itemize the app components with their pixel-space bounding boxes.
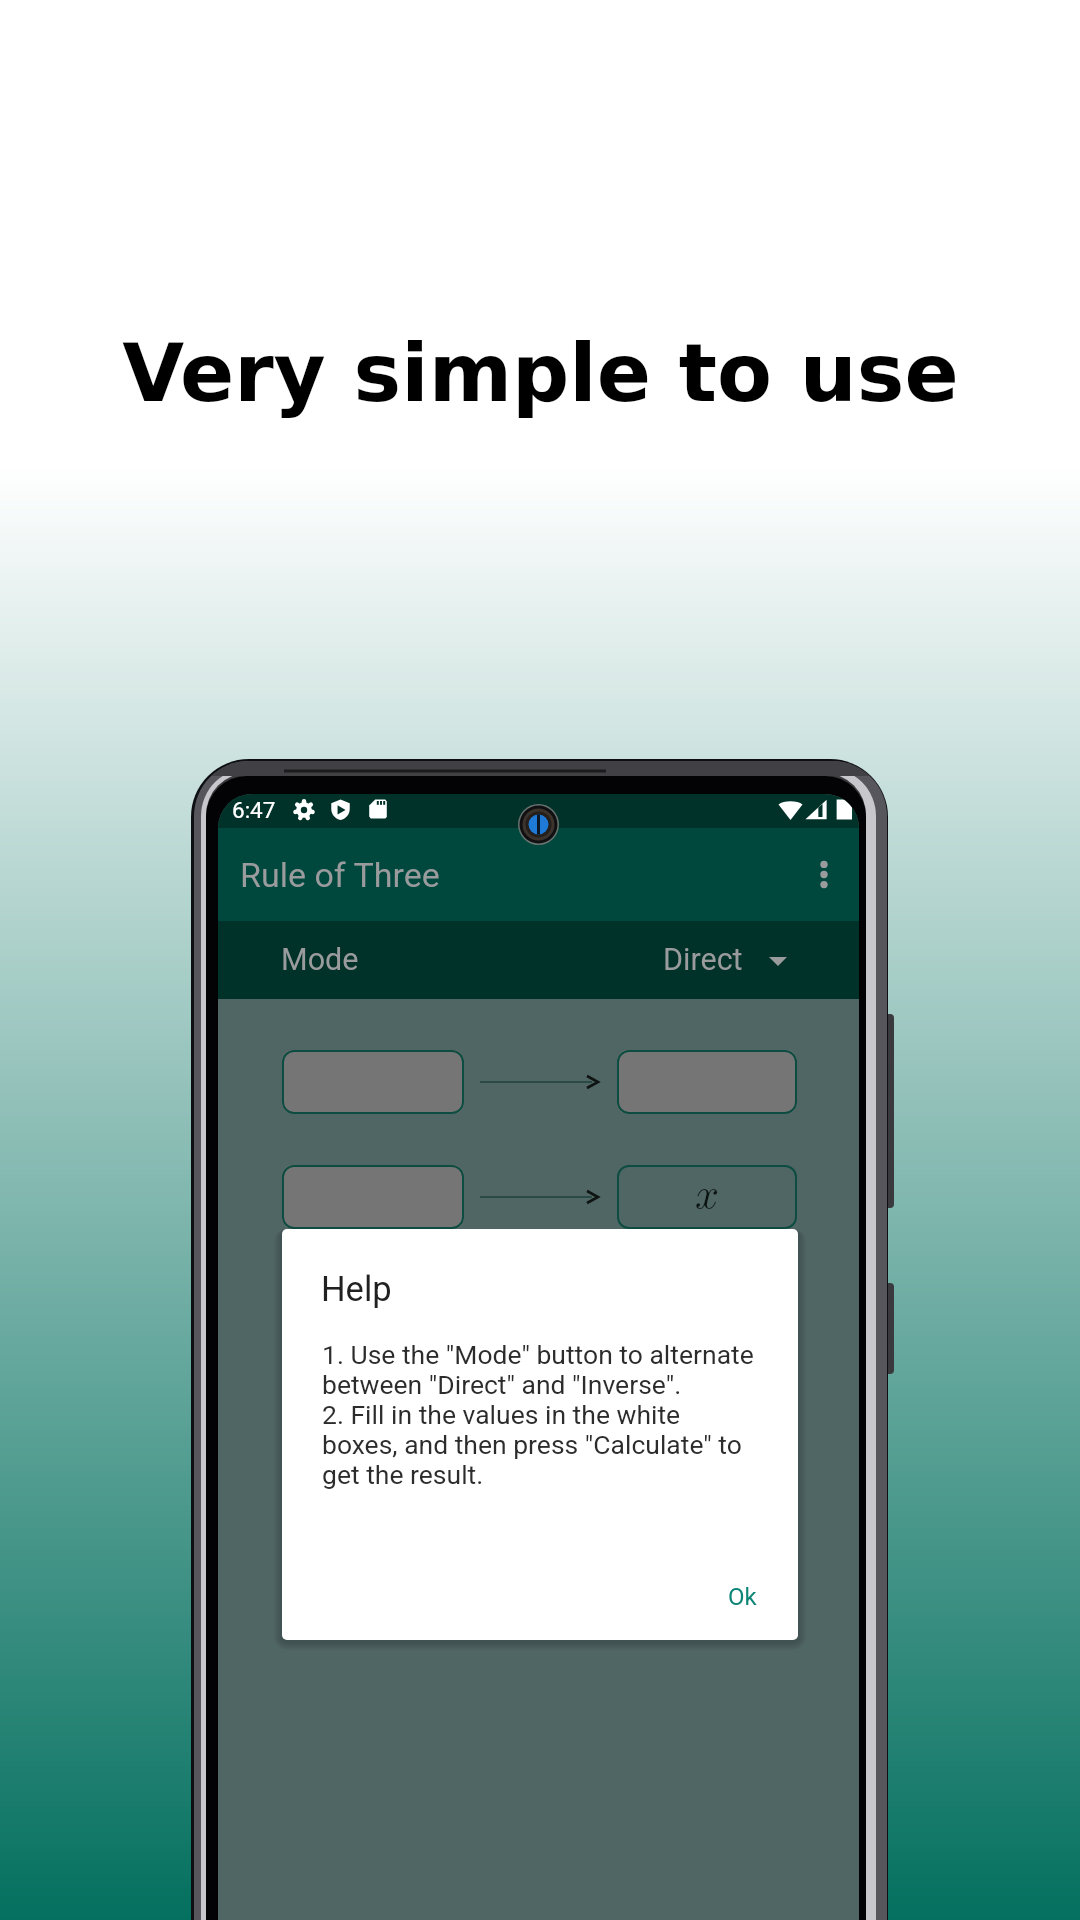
staticText: 6:47 (232, 797, 276, 823)
button[interactable]: 𝑥 (617, 1165, 797, 1229)
button[interactable]: Rule of Three (218, 828, 859, 921)
button[interactable] (617, 1050, 797, 1114)
staticText: Ok (728, 1583, 757, 1611)
staticText: Rule of Three (240, 855, 440, 895)
button[interactable]: Ok (718, 1575, 767, 1619)
button[interactable]: Mode (218, 921, 859, 999)
staticText: 1. Use the "Mode" button to alternate be… (322, 1339, 754, 1490)
button[interactable]: More options (798, 849, 850, 901)
staticText: Help (321, 1269, 392, 1309)
button[interactable] (282, 1165, 464, 1229)
button[interactable] (282, 1050, 464, 1114)
staticText: Mode (281, 942, 359, 978)
staticText: 𝑥 (695, 1174, 720, 1216)
staticText: Direct (663, 942, 743, 978)
staticText: Very simple to use (122, 327, 959, 420)
